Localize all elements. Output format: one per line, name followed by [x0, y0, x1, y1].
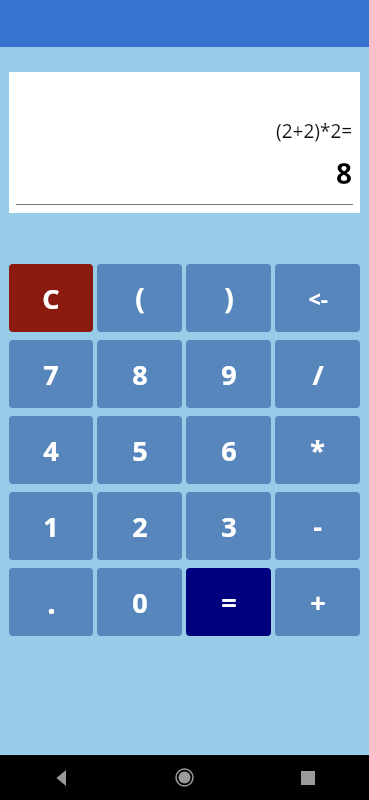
staticText: * — [310, 432, 325, 469]
button[interactable]: Home — [123, 755, 246, 800]
button[interactable]: - — [275, 492, 360, 560]
button[interactable]: 0 — [97, 568, 182, 636]
button[interactable]: * — [275, 416, 360, 484]
button[interactable]: ) — [186, 264, 271, 332]
staticText: 6 — [221, 432, 237, 469]
button[interactable]: Back — [0, 755, 123, 800]
staticText: + — [310, 584, 326, 621]
staticText: <- — [308, 283, 328, 313]
button[interactable]: 9 — [186, 340, 271, 408]
staticText: 0 — [132, 584, 148, 621]
button[interactable]: Recent apps — [246, 755, 369, 800]
staticText: 3 — [221, 508, 237, 545]
staticText: 4 — [43, 432, 59, 469]
button[interactable]: / — [275, 340, 360, 408]
staticText: 5 — [132, 432, 148, 469]
button[interactable]: 4 — [9, 416, 93, 484]
staticText: 1 — [43, 508, 59, 545]
button[interactable]: 3 — [186, 492, 271, 560]
staticText: 8 — [336, 154, 353, 192]
button[interactable]: 5 — [97, 416, 182, 484]
staticText: - — [313, 508, 322, 545]
staticText: (2+2)*2= — [276, 118, 353, 144]
staticText: = — [221, 584, 237, 621]
button[interactable]: 6 — [186, 416, 271, 484]
staticText: 2 — [132, 508, 148, 545]
button[interactable]: 8 — [97, 340, 182, 408]
staticText: C — [42, 280, 60, 317]
button[interactable]: C — [9, 264, 93, 332]
staticText: 9 — [221, 356, 237, 393]
staticText: ) — [224, 279, 234, 317]
button[interactable]: 1 — [9, 492, 93, 560]
staticText: ( — [135, 279, 145, 317]
button[interactable]: 2 — [97, 492, 182, 560]
staticText: . — [47, 582, 56, 623]
staticText: 7 — [43, 356, 59, 393]
button[interactable]: 7 — [9, 340, 93, 408]
button[interactable]: . — [9, 568, 93, 636]
staticText: 8 — [132, 356, 148, 393]
button[interactable]: = — [186, 568, 271, 636]
button[interactable]: ( — [97, 264, 182, 332]
button[interactable]: <- — [275, 264, 360, 332]
staticText: / — [312, 356, 324, 393]
button[interactable]: + — [275, 568, 360, 636]
